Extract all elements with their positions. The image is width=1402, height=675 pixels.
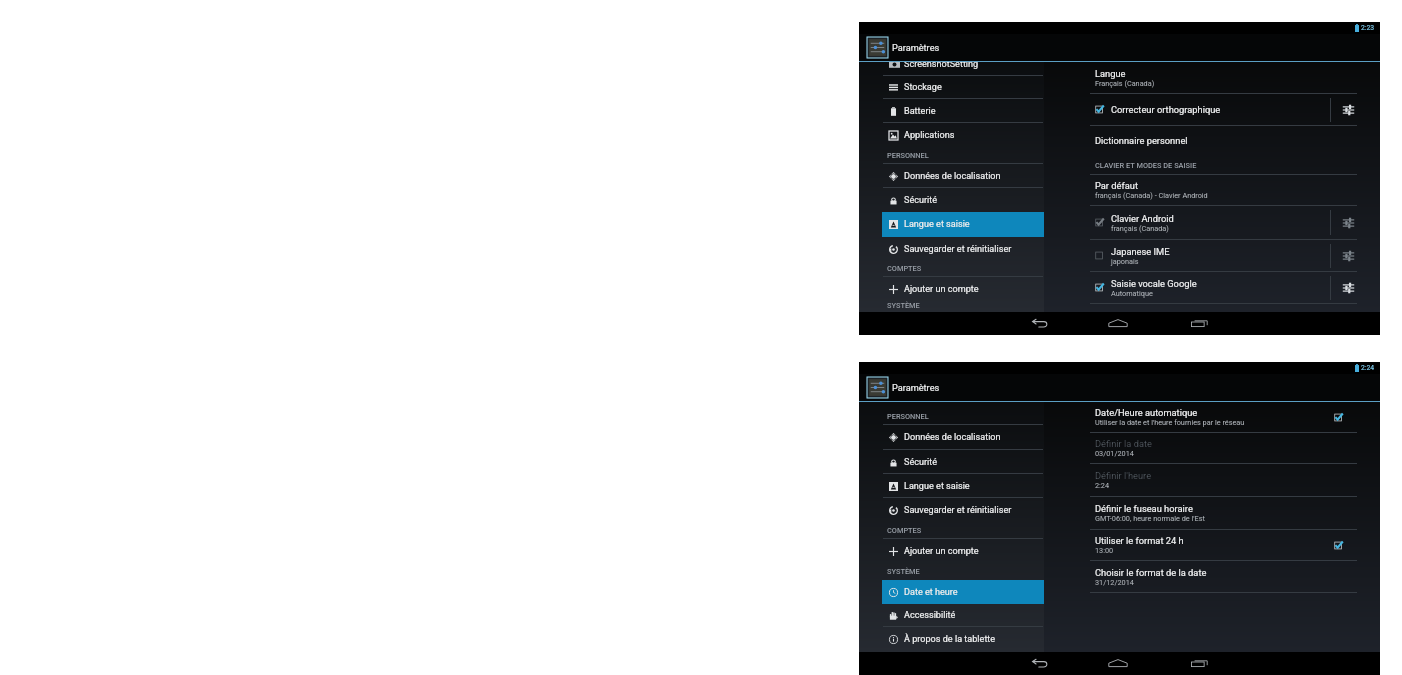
staticText: Données de localisation bbox=[904, 171, 1001, 182]
staticText: COMPTES bbox=[887, 264, 922, 273]
button[interactable]: Applications bbox=[859, 123, 1044, 147]
staticText: Choisir le format de la date bbox=[1095, 567, 1207, 578]
staticText: Sécurité bbox=[904, 195, 938, 206]
staticText: PERSONNEL bbox=[887, 151, 929, 160]
staticText: SYSTÈME bbox=[887, 301, 920, 308]
button[interactable]: Sécurité bbox=[859, 188, 1044, 212]
button[interactable]: Utiliser le format 24 h bbox=[1090, 530, 1357, 560]
button[interactable]: ScreenshotSetting bbox=[859, 62, 1044, 76]
button[interactable]: Langue et saisie bbox=[859, 212, 1044, 237]
button[interactable]: Retour bbox=[1025, 312, 1055, 334]
button[interactable]: Japanese IME bbox=[1090, 240, 1357, 271]
staticText: Données de localisation bbox=[904, 432, 1001, 443]
staticText: 31/12/2014 bbox=[1095, 578, 1134, 587]
button[interactable]: Date et heure bbox=[859, 580, 1044, 604]
staticText: Date et heure bbox=[904, 587, 958, 598]
button[interactable]: Ajouter un compte bbox=[859, 277, 1044, 301]
staticText: 2:23 bbox=[1361, 24, 1375, 32]
staticText: Sécurité bbox=[904, 457, 938, 468]
staticText: Ajouter un compte bbox=[904, 546, 979, 557]
staticText: Saisie vocale Google bbox=[1111, 278, 1197, 289]
button[interactable]: Saisie vocale Google bbox=[1090, 272, 1357, 303]
staticText: Langue et saisie bbox=[904, 219, 970, 230]
button[interactable]: À propos de la tablette bbox=[859, 627, 1044, 651]
staticText: COMPTES bbox=[887, 526, 922, 535]
staticText: français (Canada) bbox=[1111, 224, 1169, 233]
button[interactable]: Choisir le format de la date bbox=[1090, 561, 1357, 592]
button[interactable]: Sauvegarder et réinitialiser bbox=[859, 237, 1044, 261]
button[interactable]: Données de localisation bbox=[859, 425, 1044, 450]
button[interactable]: Langue bbox=[1090, 62, 1357, 93]
staticText: Utiliser la date et l'heure fournies par… bbox=[1095, 418, 1245, 427]
button[interactable]: Applications récentes bbox=[1185, 312, 1215, 334]
button[interactable]: Définir le fuseau horaire bbox=[1090, 497, 1357, 529]
staticText: Batterie bbox=[904, 106, 936, 117]
button[interactable]: Sécurité bbox=[859, 450, 1044, 474]
button[interactable]: Stockage bbox=[859, 76, 1044, 99]
staticText: japonais bbox=[1111, 257, 1139, 266]
button[interactable]: Accueil bbox=[1102, 652, 1134, 674]
staticText: À propos de la tablette bbox=[904, 634, 996, 645]
staticText: Langue et saisie bbox=[904, 481, 970, 492]
staticText: 2:24 bbox=[1361, 364, 1375, 372]
staticText: Définir le fuseau horaire bbox=[1095, 503, 1193, 514]
staticText: Applications bbox=[904, 130, 955, 141]
staticText: Ajouter un compte bbox=[904, 284, 979, 295]
staticText: Stockage bbox=[904, 82, 942, 93]
button[interactable]: Sauvegarder et réinitialiser bbox=[859, 498, 1044, 522]
other: Paramètres bbox=[867, 37, 888, 58]
staticText: Sauvegarder et réinitialiser bbox=[904, 244, 1012, 255]
staticText: Langue bbox=[1095, 68, 1126, 79]
other: Paramètres bbox=[1342, 282, 1355, 294]
other: Paramètres bbox=[867, 377, 888, 398]
staticText: 13:00 bbox=[1095, 546, 1114, 555]
staticText: Dictionnaire personnel bbox=[1095, 135, 1188, 146]
staticText: PERSONNEL bbox=[887, 412, 929, 421]
staticText: Automatique bbox=[1111, 289, 1153, 298]
button[interactable]: Dictionnaire personnel bbox=[1090, 126, 1357, 154]
staticText: Sauvegarder et réinitialiser bbox=[904, 505, 1012, 516]
staticText: Date/Heure automatique bbox=[1095, 407, 1198, 418]
staticText: Paramètres bbox=[892, 42, 940, 53]
button[interactable]: Par défaut bbox=[1090, 175, 1357, 205]
button[interactable]: Ajouter un compte bbox=[859, 539, 1044, 563]
other: Paramètres bbox=[1342, 217, 1355, 229]
button[interactable]: Retour bbox=[1025, 652, 1055, 674]
staticText: Accessibilité bbox=[904, 610, 956, 621]
button[interactable]: Langue et saisie bbox=[859, 474, 1044, 498]
button[interactable]: Accessibilité bbox=[859, 604, 1044, 627]
button[interactable]: Définir la date bbox=[1090, 433, 1357, 463]
staticText: 03/01/2014 bbox=[1095, 449, 1134, 458]
button[interactable]: Applications récentes bbox=[1185, 652, 1215, 674]
button[interactable]: Clavier Android bbox=[1090, 206, 1357, 239]
staticText: Définir l'heure bbox=[1095, 470, 1152, 481]
staticText: français (Canada) - Clavier Android bbox=[1095, 191, 1208, 200]
button[interactable]: Batterie bbox=[859, 99, 1044, 123]
other: Paramètres bbox=[1342, 250, 1355, 262]
staticText: Paramètres bbox=[892, 382, 940, 393]
staticText: Par défaut bbox=[1095, 180, 1138, 191]
staticText: Définir la date bbox=[1095, 438, 1152, 449]
staticText: Correcteur orthographique bbox=[1111, 104, 1221, 115]
button[interactable]: Accueil bbox=[1102, 312, 1134, 334]
staticText: SYSTÈME bbox=[887, 567, 920, 576]
button[interactable]: Données de localisation bbox=[859, 164, 1044, 188]
other: Paramètres bbox=[1342, 104, 1355, 116]
staticText: CLAVIER ET MODES DE SAISIE bbox=[1095, 161, 1197, 170]
staticText: GMT-06:00, heure normale de l'Est bbox=[1095, 514, 1205, 523]
staticText: 2:24 bbox=[1095, 481, 1110, 490]
staticText: Français (Canada) bbox=[1095, 79, 1155, 88]
staticText: ScreenshotSetting bbox=[904, 62, 979, 70]
button[interactable]: Date/Heure automatique bbox=[1090, 402, 1357, 432]
button[interactable]: Correcteur orthographique bbox=[1090, 94, 1357, 125]
staticText: Clavier Android bbox=[1111, 213, 1174, 224]
staticText: Japanese IME bbox=[1111, 246, 1170, 257]
button[interactable]: Définir l'heure bbox=[1090, 464, 1357, 496]
staticText: Utiliser le format 24 h bbox=[1095, 535, 1184, 546]
